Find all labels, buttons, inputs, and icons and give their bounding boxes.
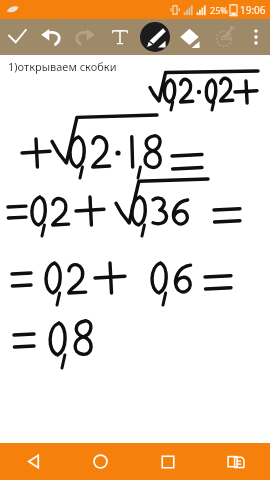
button[interactable]: Recent apps xyxy=(134,443,202,480)
button[interactable]: More options xyxy=(242,19,270,55)
button[interactable]: 1)открываем скобки xyxy=(0,55,270,443)
button[interactable]: Pen tool xyxy=(137,19,172,55)
staticText: 25% xyxy=(210,4,228,16)
button[interactable]: Home xyxy=(67,443,134,480)
button[interactable]: Eraser xyxy=(172,19,207,55)
button[interactable]: Back xyxy=(0,443,67,480)
staticText: 19:06 xyxy=(240,3,266,17)
button[interactable]: Undo xyxy=(34,19,68,55)
button[interactable]: Redo xyxy=(68,19,102,55)
button[interactable]: Text tool xyxy=(102,19,137,55)
button[interactable]: Lasso select xyxy=(207,19,242,55)
button[interactable]: Done xyxy=(0,19,34,55)
staticText: 1)открываем скобки xyxy=(8,59,117,74)
button[interactable]: Multi window xyxy=(202,443,270,480)
